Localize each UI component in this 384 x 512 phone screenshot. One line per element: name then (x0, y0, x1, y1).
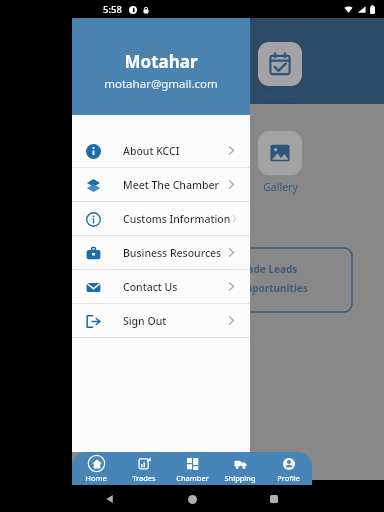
staticText: Contact Us (123, 280, 178, 294)
button[interactable]: Recents (264, 489, 284, 509)
button[interactable]: Contact Us (72, 270, 250, 303)
staticText: Meet The Chamber (123, 178, 219, 192)
button[interactable]: Events (248, 42, 312, 105)
button[interactable]: Trades (120, 452, 168, 485)
button[interactable]: Back (100, 489, 120, 509)
staticText: Business Resources (123, 246, 222, 260)
button[interactable]: Business Resources (72, 236, 250, 269)
staticText: Trade Leads (238, 262, 298, 276)
staticText: Gallery (263, 180, 298, 194)
button[interactable]: Home (72, 452, 120, 485)
staticText: Events (264, 91, 297, 105)
button[interactable]: Gallery (248, 131, 312, 194)
button[interactable]: Shipping (216, 452, 264, 485)
staticText: Customs Information (123, 212, 231, 226)
staticText: 5:58 (103, 3, 122, 16)
staticText: Trades (132, 473, 156, 483)
staticText: Home (85, 473, 107, 483)
button[interactable]: Meet The Chamber (72, 168, 250, 201)
staticText: Profile (277, 473, 300, 483)
button[interactable]: About KCCI (72, 134, 250, 167)
staticText: Chamber (176, 473, 209, 483)
button[interactable]: Profile (264, 452, 312, 485)
staticText: Shipping (224, 473, 256, 483)
button[interactable]: Notifications (114, 77, 136, 99)
button[interactable]: Customs Information (72, 202, 250, 235)
button[interactable]: Chamber (168, 452, 216, 485)
staticText: Motahar (124, 50, 198, 73)
button[interactable]: Home (182, 489, 202, 509)
staticText: motahar@gmail.com (104, 76, 218, 92)
staticText: Sign Out (123, 314, 167, 328)
staticText: Opportunities (238, 281, 308, 295)
button[interactable]: Sign Out (72, 304, 250, 337)
staticText: About KCCI (123, 144, 180, 158)
